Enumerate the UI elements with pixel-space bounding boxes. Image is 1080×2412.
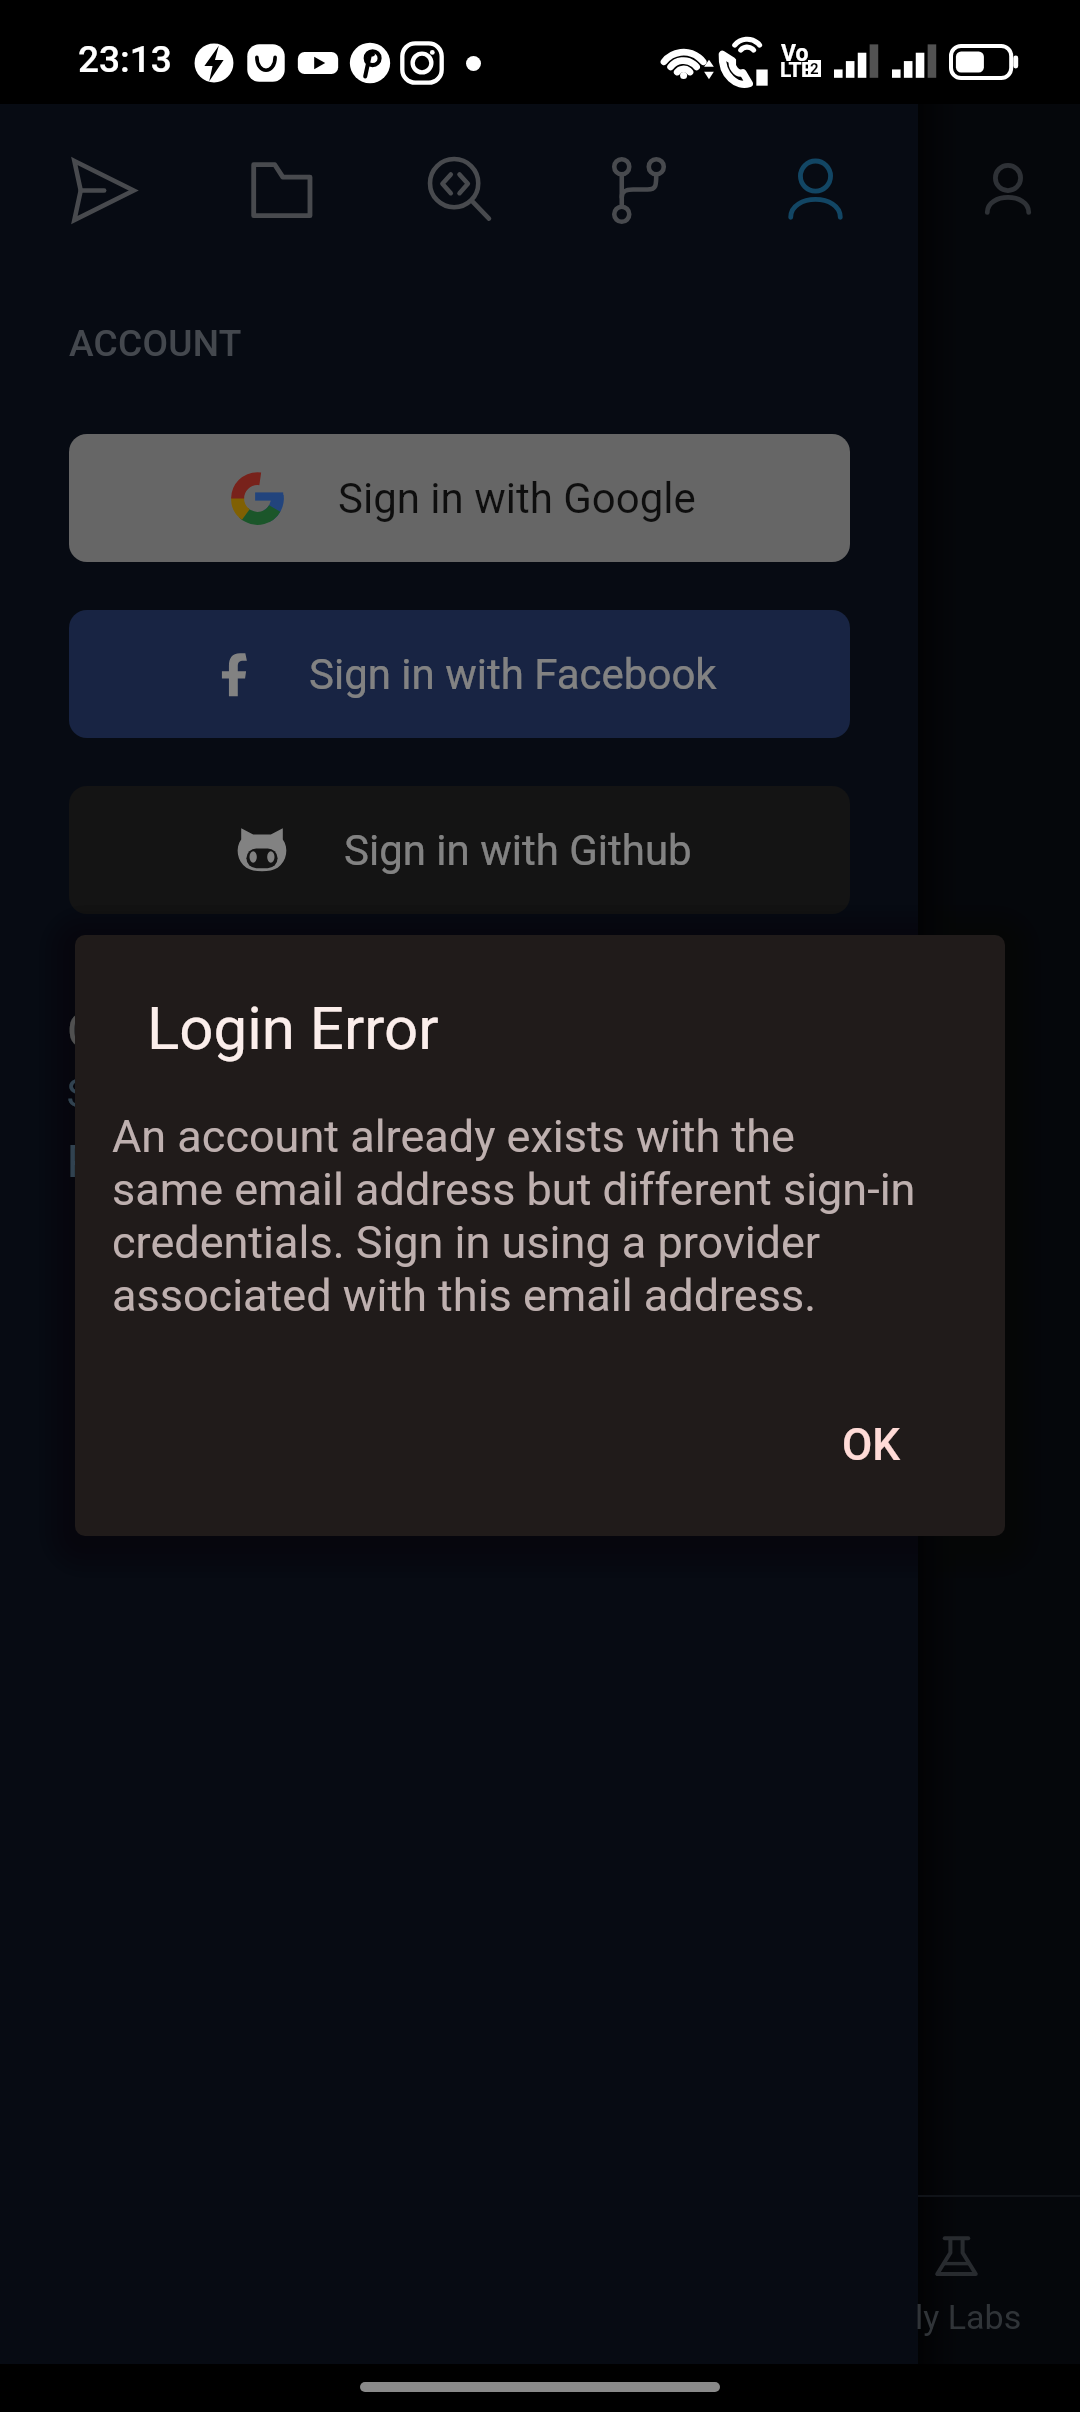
staticText: 23:13: [78, 38, 172, 81]
button[interactable]: Branches: [548, 104, 726, 276]
staticText: Privacy policy: [67, 1136, 336, 1188]
staticText: ly Labs: [915, 2297, 1022, 2337]
staticText: Vo: [781, 40, 809, 67]
staticText: Continue as guest: [67, 1002, 452, 1058]
staticText: Sign in with Github: [344, 826, 692, 875]
staticText: An account already exists with the same …: [112, 1110, 916, 1322]
button[interactable]: Labs: [918, 2196, 1080, 2364]
staticText: Sign in with Facebook: [309, 650, 717, 699]
staticText: ACCOUNT: [69, 322, 242, 365]
button[interactable]: Sign in with Google: [69, 434, 850, 562]
button[interactable]: Send: [14, 104, 192, 276]
staticText: OK: [842, 1419, 901, 1471]
button[interactable]: Sign in with email: [67, 1072, 848, 1128]
button[interactable]: Code search: [370, 104, 548, 276]
button[interactable]: Sign in with Facebook: [69, 610, 850, 738]
button[interactable]: Account: [726, 104, 904, 276]
staticText: LTE: [780, 58, 813, 83]
staticText: Sign in with Google: [338, 474, 696, 523]
button[interactable]: Files: [192, 104, 370, 276]
button[interactable]: Sign in with Github: [69, 786, 850, 914]
button[interactable]: OK: [805, 1397, 937, 1493]
staticText: Login Error: [147, 993, 439, 1063]
button[interactable]: Continue as guest: [67, 1002, 848, 1064]
staticText: Sign in with email: [67, 1072, 364, 1117]
button[interactable]: Privacy policy: [67, 1136, 848, 1198]
button[interactable]: Account: [958, 132, 1058, 248]
staticText: 2: [810, 60, 819, 77]
